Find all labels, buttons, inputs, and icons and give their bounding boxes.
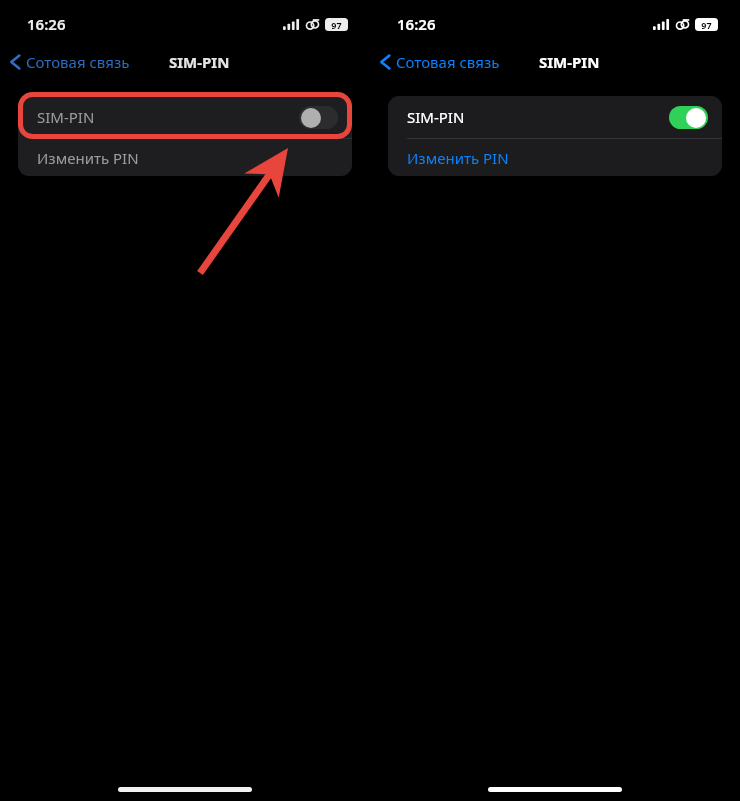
staticText: SIM-PIN xyxy=(539,52,600,72)
button[interactable]: Изменить PIN xyxy=(18,139,352,176)
staticText: SIM-PIN xyxy=(37,107,95,127)
button[interactable]: SIM-PIN on xyxy=(669,106,708,129)
other: Highlight SIM-PIN toggle xyxy=(18,92,352,139)
staticText: SIM-PIN xyxy=(407,107,465,127)
staticText: SIM-PIN xyxy=(169,52,230,72)
button[interactable]: SIM-PIN xyxy=(18,96,352,138)
staticText: Изменить PIN xyxy=(407,148,509,168)
staticText: 97 xyxy=(701,19,712,31)
staticText: 97 xyxy=(331,19,342,31)
button[interactable]: Изменить PIN xyxy=(388,139,722,176)
staticText: 16:26 xyxy=(397,14,436,34)
staticText: Сотовая связь xyxy=(26,52,130,72)
staticText: 16:26 xyxy=(27,14,66,34)
staticText: Изменить PIN xyxy=(37,148,139,168)
staticText: Сотовая связь xyxy=(396,52,500,72)
button[interactable]: Сотовая связь xyxy=(370,46,508,78)
button[interactable]: Сотовая связь xyxy=(0,46,138,78)
button[interactable]: SIM-PIN off xyxy=(299,106,338,129)
button[interactable]: SIM-PIN xyxy=(388,96,722,138)
